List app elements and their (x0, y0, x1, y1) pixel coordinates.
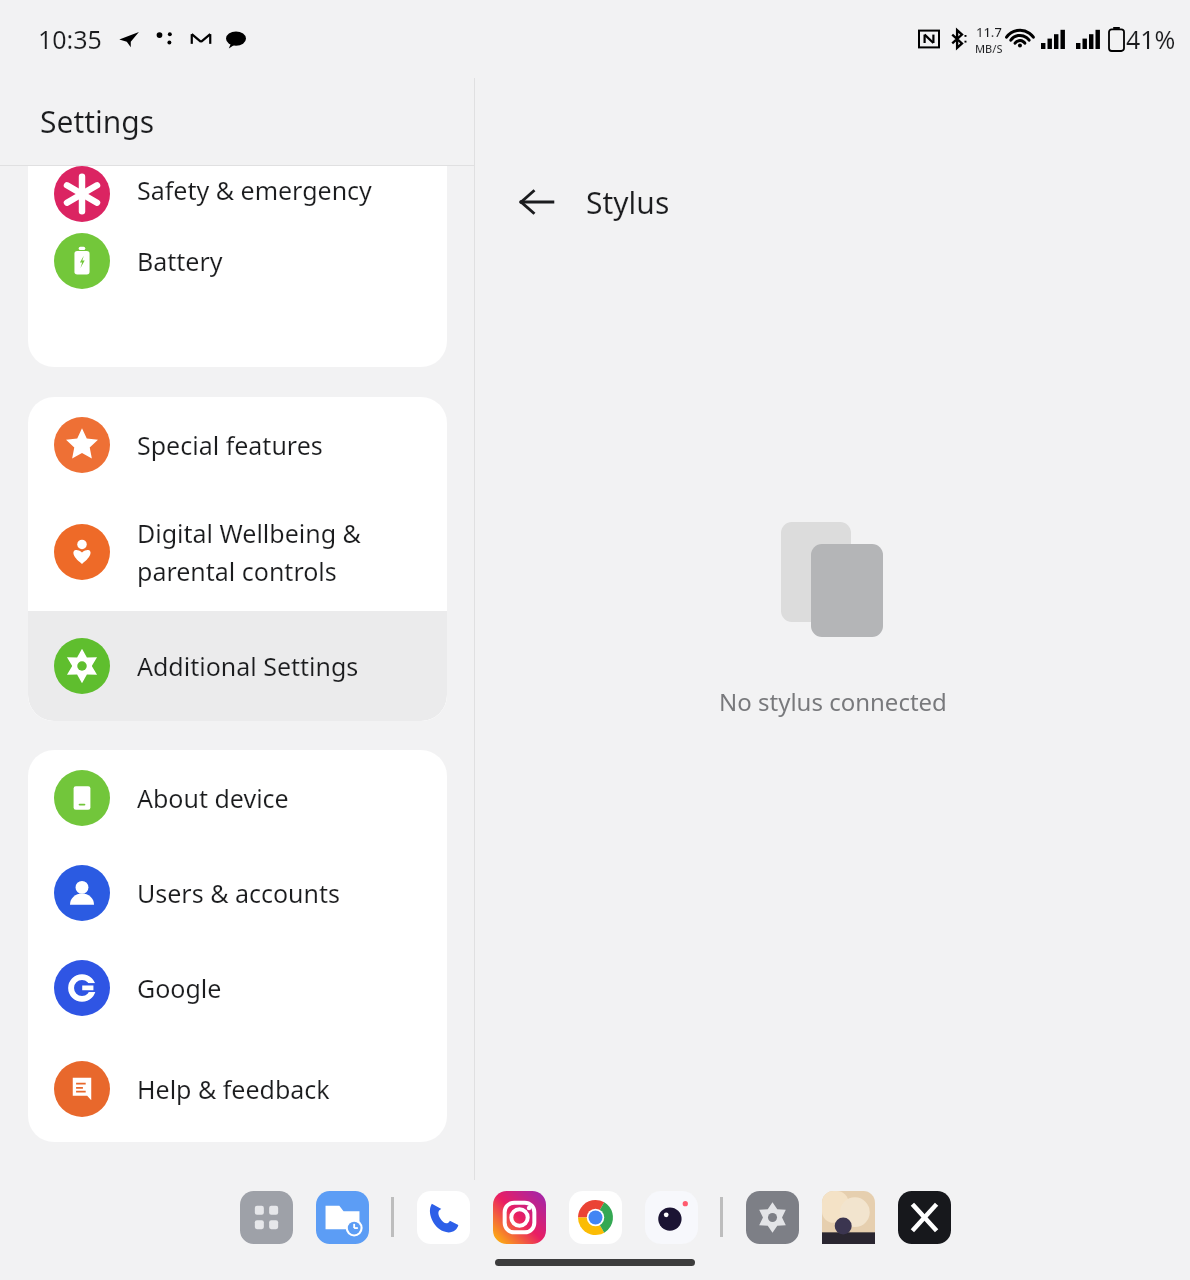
button[interactable]: Safety & emergency (28, 166, 447, 213)
staticText: 11.7 (976, 23, 1002, 41)
staticText: Stylus (586, 182, 670, 223)
staticText: MB/S (975, 41, 1003, 56)
button[interactable]: X (895, 1188, 953, 1246)
staticText: Settings (40, 101, 155, 142)
staticText: Google (137, 971, 222, 1005)
button[interactable]: Game (819, 1188, 877, 1246)
button[interactable]: About device (28, 750, 447, 845)
button[interactable]: All apps (237, 1188, 295, 1246)
staticText: Safety & emergency (137, 173, 372, 207)
button[interactable]: Camera (642, 1188, 700, 1246)
button[interactable]: Phone (414, 1188, 472, 1246)
button[interactable]: Users & accounts (28, 845, 447, 940)
staticText: 41% (1126, 22, 1176, 56)
button[interactable]: Files (313, 1188, 371, 1246)
button[interactable]: Help & feedback (28, 1035, 447, 1142)
button[interactable]: Chrome (566, 1188, 624, 1246)
button[interactable]: Digital Wellbeing & parental controls (28, 493, 447, 611)
staticText: About device (137, 781, 289, 815)
staticText: 10:35 (38, 22, 102, 56)
staticText: Special features (137, 428, 323, 462)
staticText: Help & feedback (137, 1072, 330, 1106)
staticText: Digital Wellbeing & parental controls (137, 516, 361, 588)
button[interactable]: Settings (743, 1188, 801, 1246)
staticText: Users & accounts (137, 876, 341, 910)
button[interactable]: Google (28, 940, 447, 1035)
button[interactable]: Back (509, 174, 565, 230)
staticText: Battery (137, 244, 223, 278)
button[interactable]: Special features (28, 397, 447, 493)
button[interactable]: Battery (28, 213, 447, 308)
staticText: No stylus connected (719, 685, 947, 718)
button[interactable]: Additional Settings (28, 611, 447, 721)
staticText: Additional Settings (137, 649, 359, 683)
button[interactable]: Instagram (490, 1188, 548, 1246)
